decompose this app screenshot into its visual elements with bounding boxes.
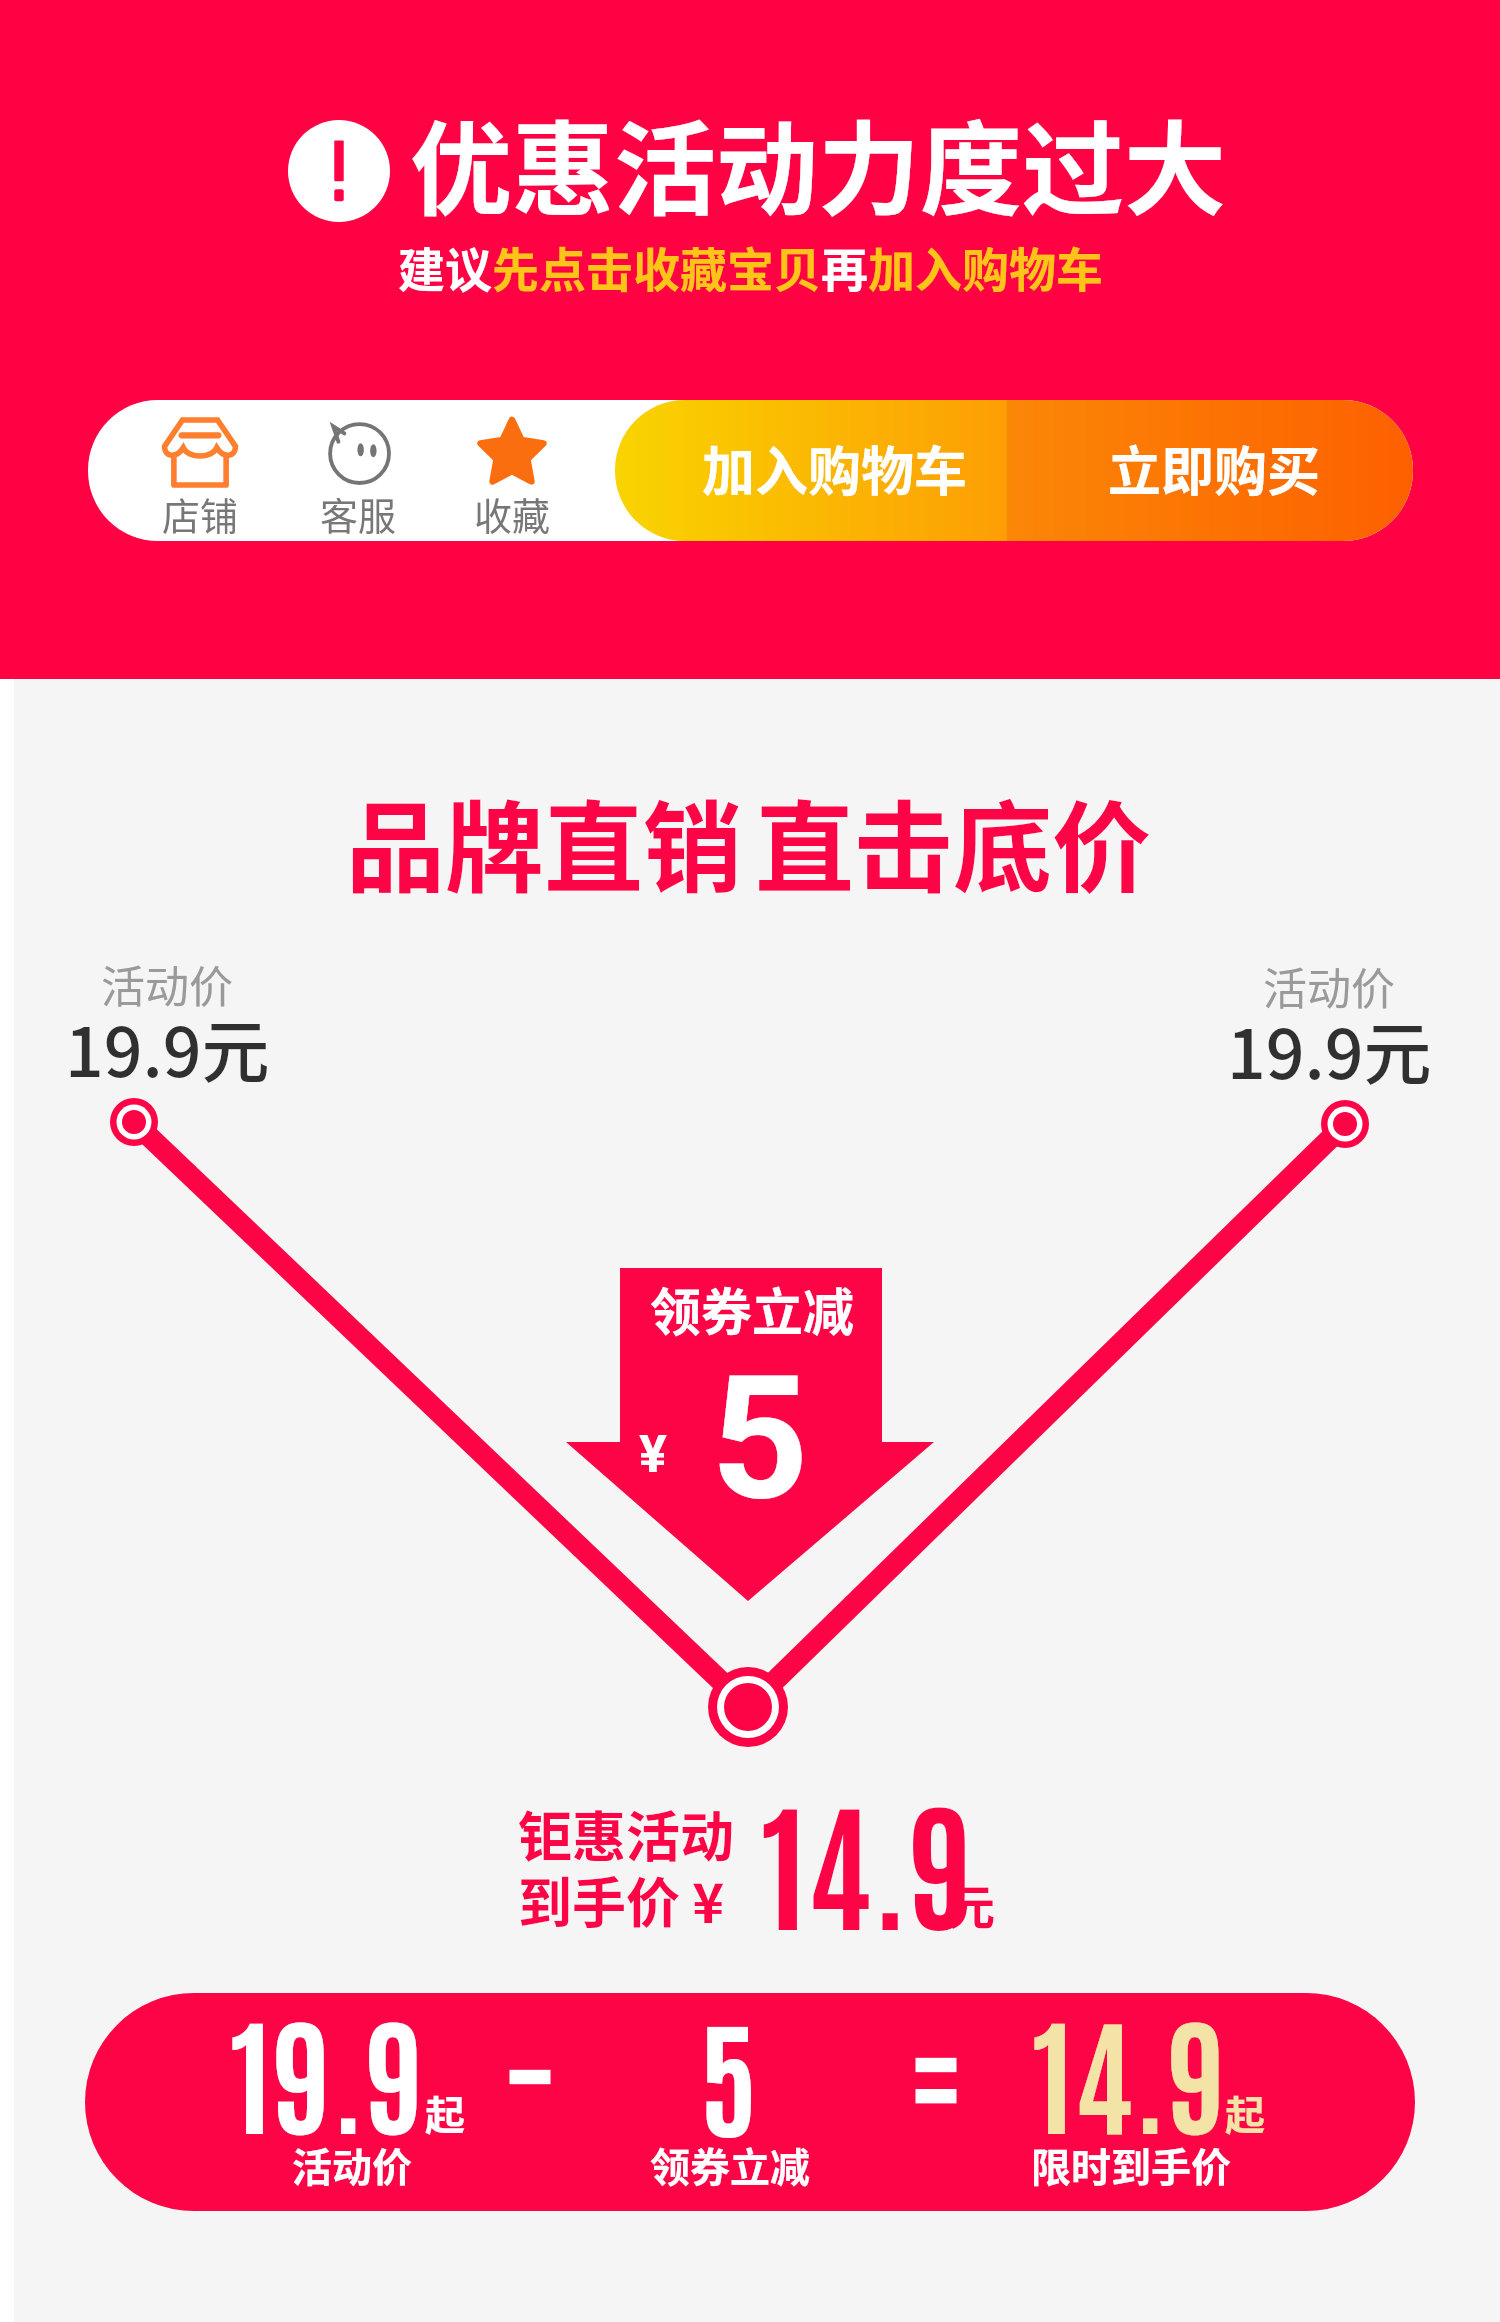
staticText: 立即购买 <box>1108 430 1320 507</box>
staticText: 限时到手价 <box>1031 2136 1231 2194</box>
button[interactable]: 店铺 <box>130 400 270 541</box>
staticText: 收藏 <box>474 486 551 541</box>
staticText: 活动价 <box>101 952 233 1016</box>
button[interactable]: 加入购物车 <box>634 400 1034 541</box>
staticText: 元 <box>948 1869 995 1937</box>
staticText: 活动价 <box>292 2136 412 2194</box>
staticText: 加入购物车 <box>702 430 967 507</box>
staticText: 领券立减 <box>650 2136 810 2194</box>
button[interactable]: 收藏 <box>442 400 582 541</box>
staticText: 活动价 <box>1263 954 1395 1018</box>
staticText: 店铺 <box>162 486 239 541</box>
staticText: 钜惠活动 <box>518 1794 734 1872</box>
other: 店铺 <box>161 416 239 489</box>
button[interactable]: 19.9 <box>85 1993 1415 2211</box>
staticText: 建议先点击收藏宝贝再加入购物车 <box>398 232 1103 300</box>
staticText: 19.9 <box>230 1993 425 2152</box>
button[interactable]: 客服 <box>288 400 428 541</box>
staticText: 5 <box>699 1993 759 2155</box>
staticText: 5 <box>711 1339 809 1538</box>
staticText: 起 <box>425 2084 465 2142</box>
button[interactable]: 立即购买 <box>1015 400 1413 541</box>
staticText: 19.9元 <box>65 998 270 1096</box>
other: 收藏 <box>479 420 545 480</box>
other: 客服 <box>327 421 389 483</box>
staticText: 领券立减 <box>650 1272 855 1346</box>
staticText: 起 <box>1225 2084 1265 2142</box>
staticText: 到手价 ¥ <box>518 1860 725 1938</box>
staticText: 19.9元 <box>1227 1000 1432 1098</box>
staticText: 品牌直销 <box>346 769 742 912</box>
staticText: 14.9 <box>761 1768 974 1949</box>
staticText: 直击底价 <box>755 769 1151 912</box>
staticText: 优惠活动力度过大 <box>410 89 1226 237</box>
staticText: ¥ <box>639 1424 667 1485</box>
staticText: 客服 <box>320 486 397 541</box>
staticText: 14.9 <box>1032 1993 1227 2152</box>
